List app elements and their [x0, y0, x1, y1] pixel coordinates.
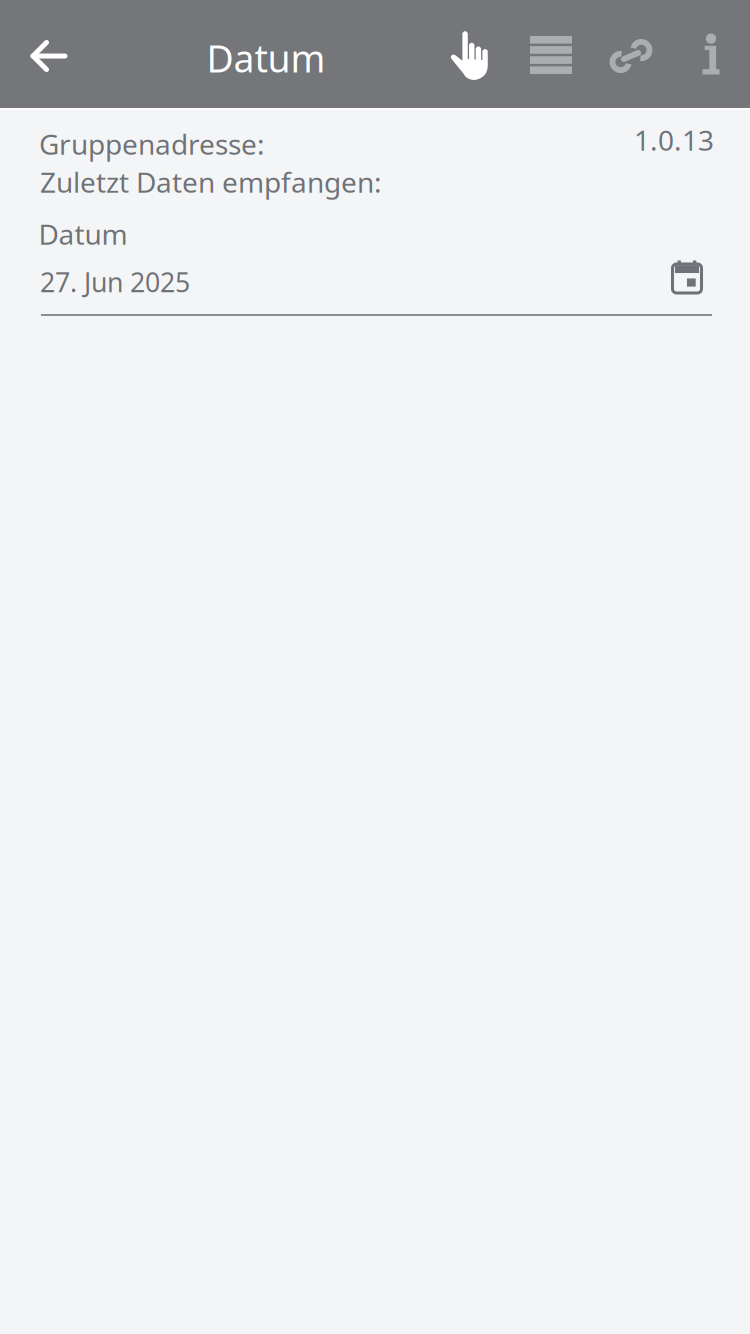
staticText: Zuletzt Daten empfangen: — [40, 163, 382, 201]
staticText: 27. Jun 2025 — [40, 264, 190, 300]
staticText: 1.0.13 — [634, 121, 714, 159]
button[interactable]: Info — [679, 0, 743, 107]
button[interactable]: Link — [596, 2, 666, 109]
button[interactable]: Menu — [516, 1, 586, 108]
staticText: Gruppenadresse: — [39, 125, 265, 163]
button[interactable]: Select — [439, 1, 503, 108]
staticText: Datum — [206, 33, 325, 83]
button[interactable]: 27. Jun 2025 — [41, 255, 712, 317]
staticText: Datum — [38, 215, 127, 253]
button[interactable]: Back — [7, 2, 91, 109]
button[interactable]: Pick date — [659, 247, 715, 303]
